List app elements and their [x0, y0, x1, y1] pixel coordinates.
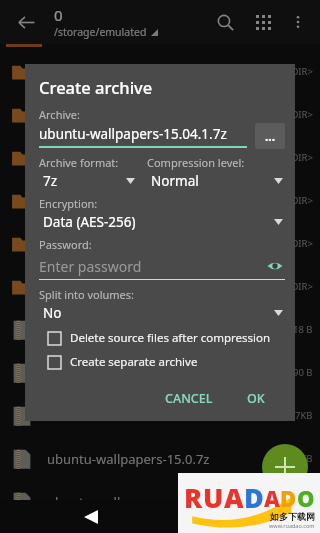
staticText: Encryption:	[39, 196, 98, 211]
staticText: 18 B	[293, 323, 313, 336]
staticText: <DIR>	[286, 151, 313, 164]
staticText: Password:	[39, 237, 92, 252]
staticText	[47, 364, 293, 382]
staticText	[47, 278, 286, 296]
staticText	[47, 192, 286, 210]
staticText: Compression level:	[147, 155, 245, 170]
button[interactable]: OK	[237, 384, 275, 413]
staticText: D	[280, 483, 297, 513]
staticText: A	[224, 479, 244, 516]
staticText: 7z	[43, 172, 126, 190]
button[interactable]: 7KB	[0, 394, 320, 437]
staticText: Normal	[151, 172, 274, 190]
button[interactable]: Data (AES-256)	[39, 213, 285, 231]
button[interactable]: <DIR>	[0, 93, 320, 136]
button[interactable]: Add	[262, 444, 308, 490]
staticText: ubuntu-wallpapers-15.04.1.7z	[39, 125, 227, 143]
staticText: /storage/emulated	[54, 25, 147, 39]
staticText: Enter password	[39, 257, 265, 276]
button[interactable]: <DIR>	[0, 222, 320, 265]
staticText: ...	[265, 128, 276, 144]
button[interactable]: <DIR>	[0, 265, 320, 308]
staticText: D	[244, 479, 264, 516]
button[interactable]: Apps grid	[244, 3, 282, 41]
staticText	[47, 106, 286, 124]
staticText	[47, 149, 286, 167]
staticText: Split into volumes:	[39, 287, 135, 302]
staticText	[47, 63, 286, 81]
staticText: OK	[247, 390, 265, 407]
staticText: O	[297, 483, 315, 513]
button[interactable]: <DIR>	[0, 179, 320, 222]
staticText: ubuntu-wallpapers-	[47, 493, 313, 511]
button[interactable]: Browse	[255, 123, 285, 149]
button[interactable]: Back	[6, 2, 46, 42]
button[interactable]: Search	[206, 3, 244, 41]
staticText: Data (AES-256)	[43, 213, 274, 231]
staticText: No	[43, 304, 274, 322]
staticText: Delete source files after compression	[70, 330, 271, 346]
staticText: <DIR>	[286, 108, 313, 121]
button[interactable]: ubuntu-wallpapers-15.0.7z	[0, 437, 320, 480]
button[interactable]: Home	[189, 500, 225, 533]
staticText: Create separate archive	[70, 354, 198, 370]
staticText: ubuntu-wallpapers-15.0.7z	[47, 450, 295, 468]
button[interactable]: Normal	[147, 172, 285, 190]
button[interactable]: More options	[282, 6, 314, 38]
staticText: Archive:	[39, 107, 81, 122]
staticText	[47, 407, 295, 425]
button[interactable]: 7z	[39, 172, 137, 190]
staticText	[47, 321, 293, 339]
staticText: U	[203, 479, 224, 516]
staticText: <DIR>	[286, 194, 313, 207]
staticText: <DIR>	[286, 237, 313, 250]
staticText: 4KB	[295, 452, 313, 465]
staticText: CANCEL	[165, 390, 213, 407]
staticText: <DIR>	[286, 65, 313, 78]
button[interactable]: Enter password	[39, 256, 285, 276]
staticText: Create archive	[39, 76, 153, 98]
button[interactable]: Show password	[265, 256, 285, 276]
staticText	[47, 235, 286, 253]
staticText: <DIR>	[286, 280, 313, 293]
button[interactable]: Delete source files after compression	[39, 330, 285, 346]
staticText: Archive format:	[39, 155, 119, 170]
staticText: R	[184, 479, 203, 516]
button[interactable]: CANCEL	[155, 384, 223, 413]
staticText: 0	[54, 5, 63, 25]
staticText: 90 B	[293, 366, 313, 379]
staticText: www.ruadao.com	[269, 522, 315, 529]
button[interactable]: Back	[73, 500, 109, 533]
button[interactable]: 90 B	[0, 351, 320, 394]
button[interactable]: Create separate archive	[39, 354, 285, 370]
staticText: A	[264, 483, 280, 513]
button[interactable]: ubuntu-wallpapers-	[0, 480, 320, 523]
button[interactable]: <DIR>	[0, 50, 320, 93]
staticText: 如多下载网	[270, 511, 315, 522]
button[interactable]: <DIR>	[0, 136, 320, 179]
staticText: 7KB	[295, 409, 313, 422]
button[interactable]: No	[39, 304, 285, 322]
button[interactable]: 18 B	[0, 308, 320, 351]
